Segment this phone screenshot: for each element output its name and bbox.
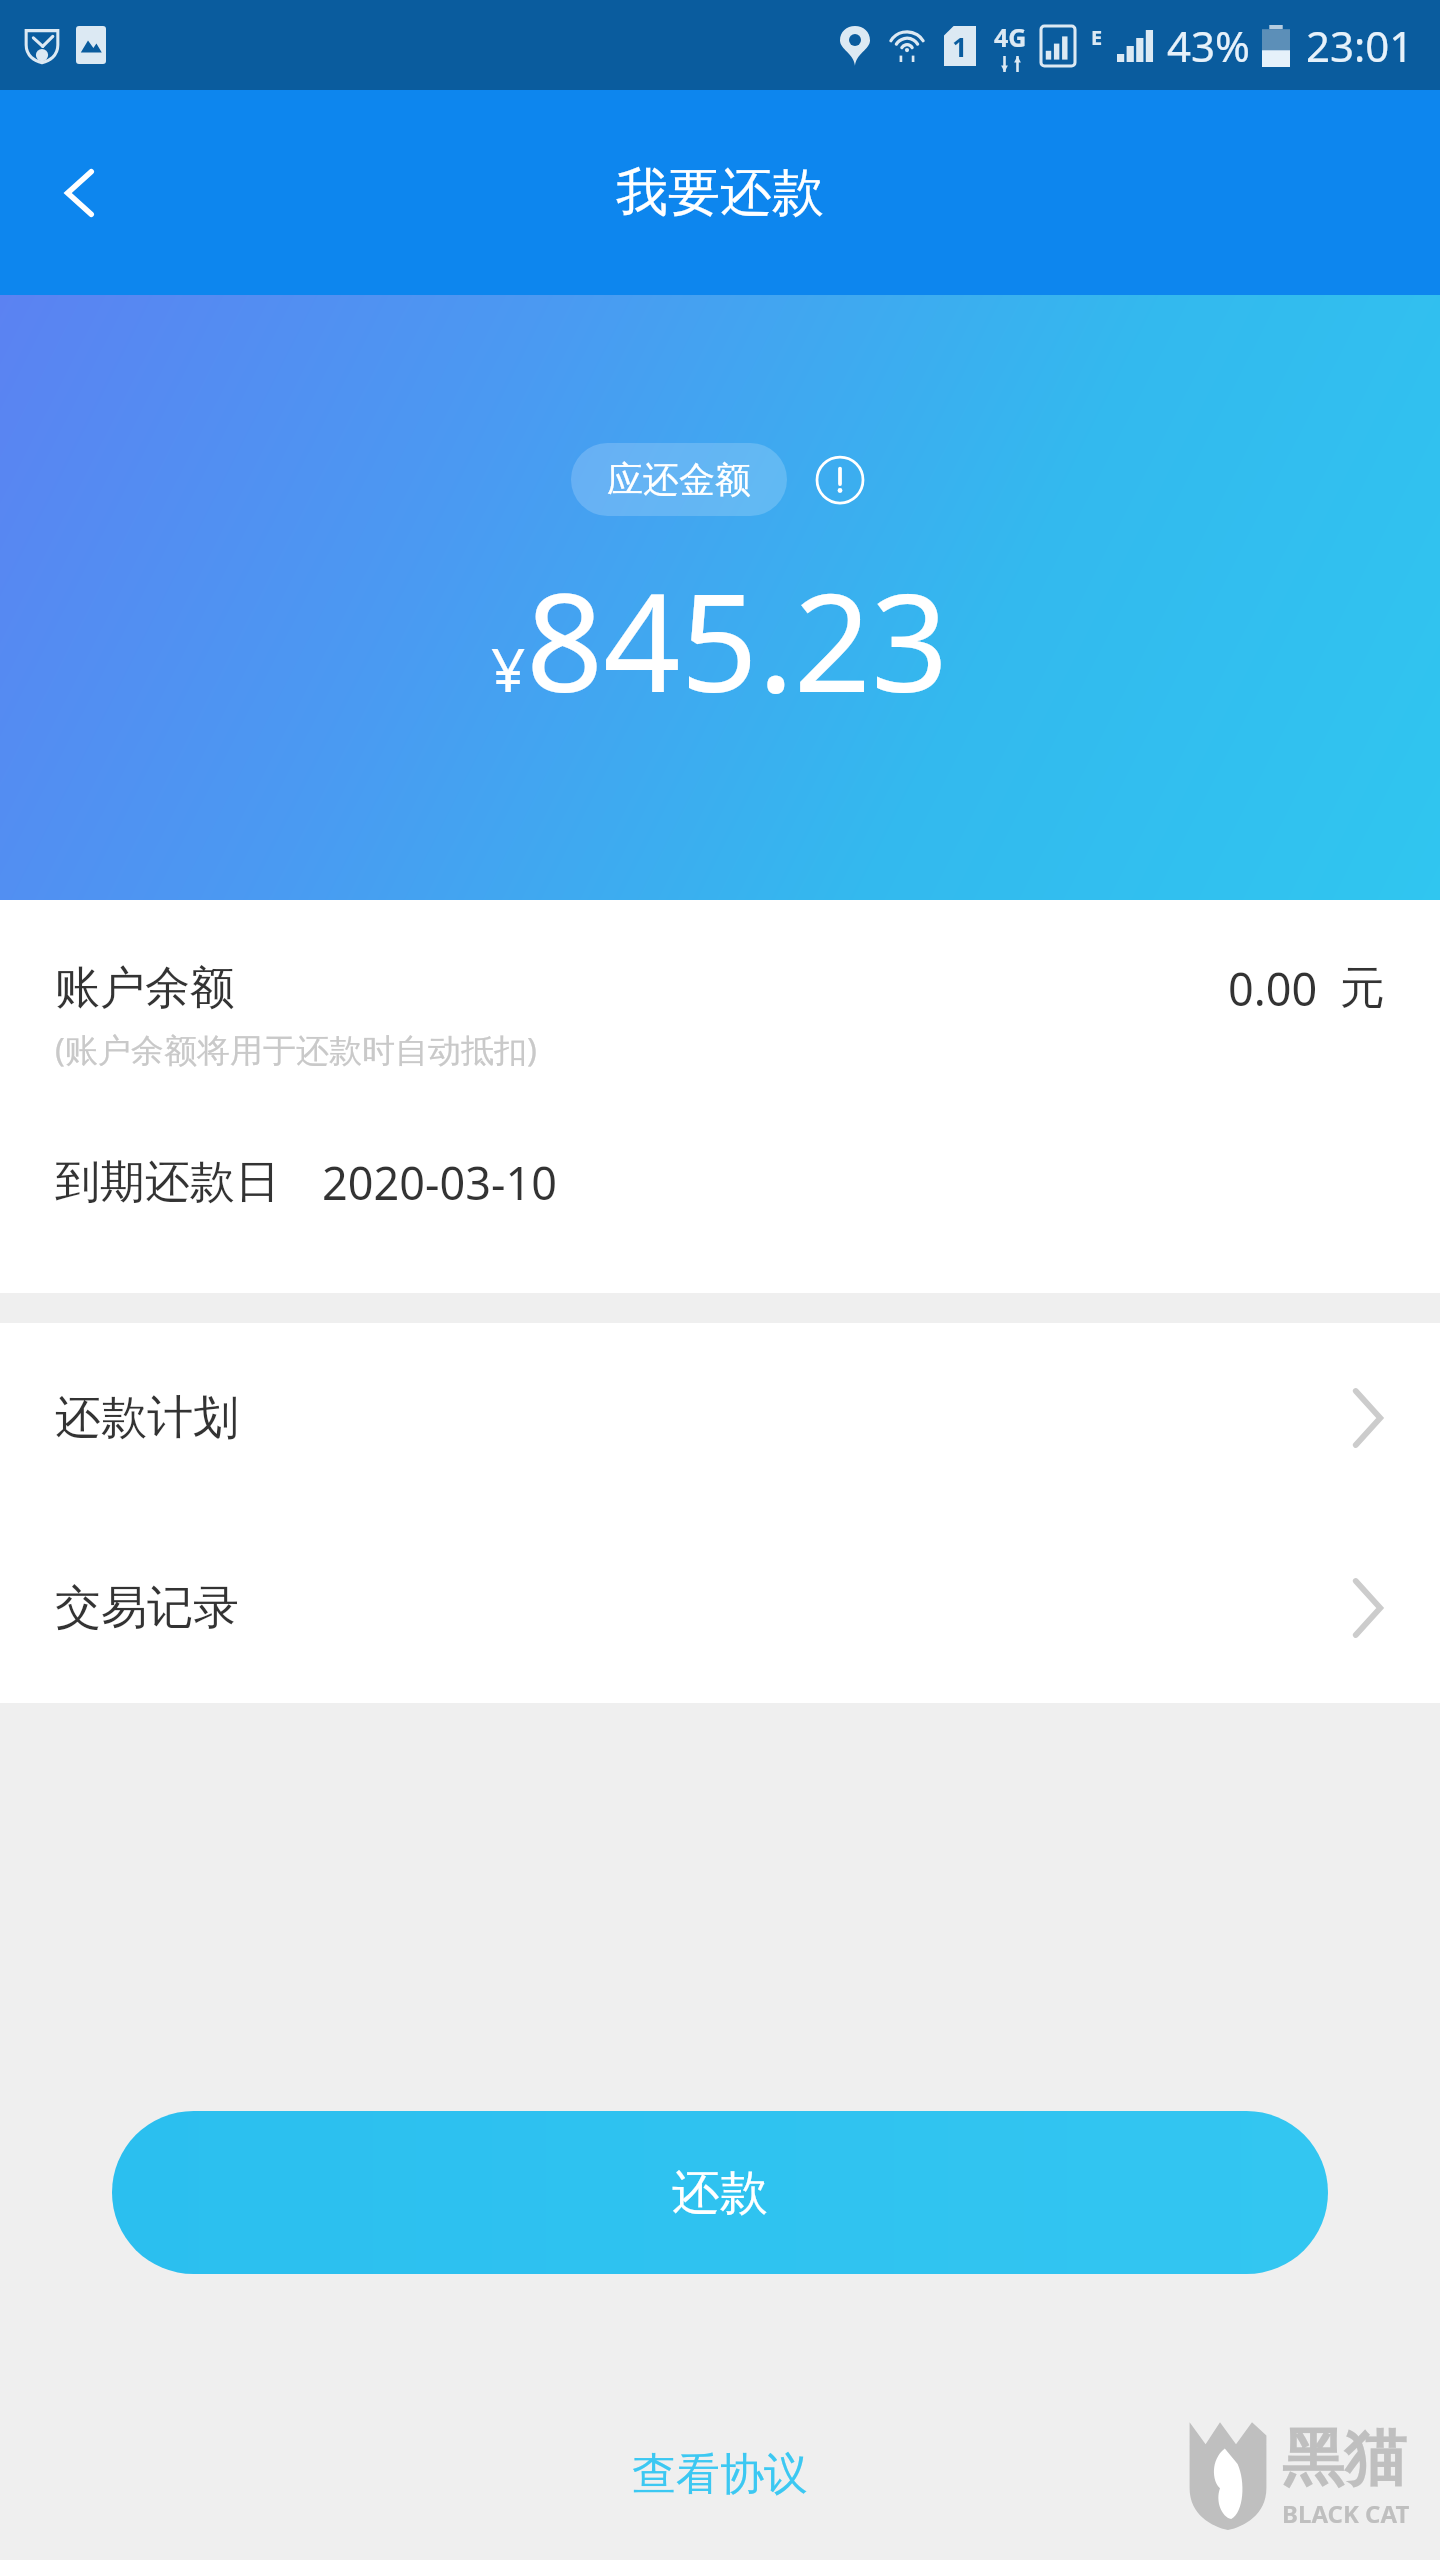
staticText: 账户余额 — [55, 960, 235, 1017]
staticText: 交易记录 — [55, 1579, 239, 1637]
staticText: 还款 — [672, 2163, 768, 2223]
button[interactable]: 还款 — [112, 2111, 1328, 2274]
button[interactable]: 交易记录 — [0, 1513, 1440, 1703]
staticText: ¥ — [491, 628, 526, 710]
staticText: E — [1091, 24, 1103, 51]
staticText: 到期还款日 — [55, 1154, 280, 1211]
button[interactable]: 应还金额 — [571, 443, 787, 516]
staticText: 查看协议 — [632, 2447, 808, 2502]
staticText: 应还金额 — [607, 457, 751, 502]
staticText: 还款计划 — [55, 1389, 239, 1447]
staticText: BLACK CAT — [1282, 2497, 1410, 2530]
staticText: 845.23 — [526, 548, 949, 732]
button[interactable]: 查看协议 — [592, 2433, 848, 2516]
button[interactable]: 还款计划 — [0, 1323, 1440, 1513]
staticText: 2020-03-10 — [322, 1152, 557, 1213]
staticText: 4G — [994, 20, 1027, 54]
staticText: 元 — [1340, 960, 1385, 1017]
staticText: 我要还款 — [616, 160, 824, 226]
staticText: 43% — [1167, 17, 1250, 74]
staticText: 23:01 — [1306, 17, 1414, 74]
staticText: 1 — [952, 28, 968, 65]
button[interactable]: 返回 — [0, 113, 160, 273]
staticText: (账户余额将用于还款时自动抵扣) — [55, 1027, 537, 1072]
button[interactable]: 金额说明 — [811, 451, 869, 509]
staticText: 黑猫 — [1282, 2419, 1406, 2497]
staticText: 0.00 — [1228, 958, 1318, 1019]
